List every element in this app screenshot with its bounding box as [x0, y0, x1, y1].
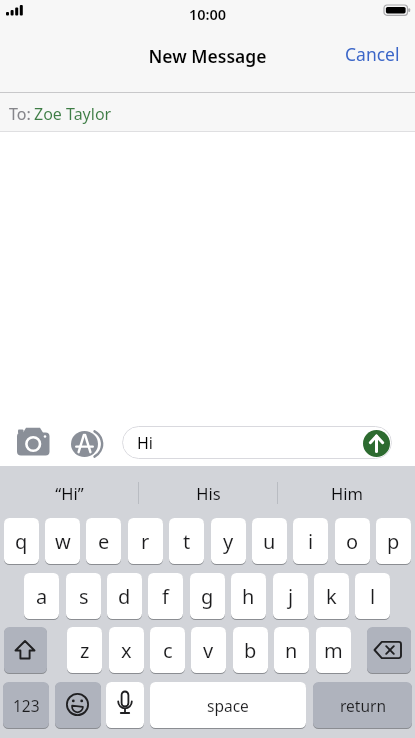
staticText: p: [387, 528, 400, 555]
button[interactable]: [363, 430, 390, 457]
button[interactable]: j: [273, 573, 308, 619]
staticText: m: [324, 637, 343, 664]
button[interactable]: d: [107, 573, 142, 619]
staticText: b: [244, 637, 257, 664]
button[interactable]: To:: [0, 93, 415, 131]
button[interactable]: n: [274, 627, 309, 673]
button[interactable]: k: [314, 573, 349, 619]
staticText: Him: [331, 482, 363, 504]
staticText: g: [201, 583, 214, 610]
staticText: a: [36, 583, 48, 610]
button[interactable]: [367, 627, 411, 673]
staticText: Cancel: [345, 42, 400, 66]
button[interactable]: g: [190, 573, 225, 619]
staticText: Zoe Taylor: [34, 103, 112, 125]
button[interactable]: w: [45, 518, 80, 564]
staticText: k: [326, 583, 337, 610]
staticText: v: [203, 637, 214, 664]
button[interactable]: [106, 682, 144, 728]
button[interactable]: l: [355, 573, 390, 619]
button[interactable]: His: [139, 470, 277, 515]
staticText: x: [121, 637, 132, 664]
staticText: His: [196, 482, 221, 504]
staticText: d: [118, 583, 131, 610]
button[interactable]: a: [24, 573, 59, 619]
button[interactable]: p: [376, 518, 411, 564]
staticText: Hi: [137, 432, 153, 454]
staticText: j: [288, 583, 294, 610]
button[interactable]: Hi: [122, 426, 392, 459]
button[interactable]: o: [335, 518, 370, 564]
staticText: s: [79, 583, 89, 610]
button[interactable]: i: [293, 518, 328, 564]
staticText: f: [162, 583, 169, 610]
staticText: l: [370, 583, 376, 610]
button[interactable]: c: [150, 627, 185, 673]
staticText: i: [308, 528, 314, 555]
staticText: z: [80, 637, 90, 664]
button[interactable]: 123: [3, 682, 49, 728]
staticText: t: [183, 528, 191, 555]
button[interactable]: y: [211, 518, 246, 564]
button[interactable]: x: [109, 627, 144, 673]
button[interactable]: b: [233, 627, 268, 673]
staticText: 123: [13, 695, 40, 716]
button[interactable]: r: [128, 518, 163, 564]
staticText: c: [163, 637, 173, 664]
button[interactable]: m: [316, 627, 351, 673]
staticText: n: [285, 637, 298, 664]
button[interactable]: return: [313, 682, 412, 728]
button[interactable]: t: [169, 518, 204, 564]
staticText: r: [141, 528, 150, 555]
staticText: h: [242, 583, 255, 610]
staticText: o: [346, 528, 359, 555]
button[interactable]: [4, 627, 47, 673]
button[interactable]: [55, 682, 101, 728]
button[interactable]: Cancel: [330, 38, 400, 70]
button[interactable]: Him: [278, 470, 415, 515]
staticText: New Message: [0, 44, 415, 68]
button[interactable]: v: [191, 627, 226, 673]
button[interactable]: e: [86, 518, 121, 564]
staticText: “Hi”: [55, 482, 84, 504]
staticText: e: [98, 528, 110, 555]
staticText: q: [15, 528, 28, 555]
button[interactable]: [14, 426, 54, 458]
staticText: y: [223, 528, 234, 555]
button[interactable]: h: [231, 573, 266, 619]
staticText: w: [55, 528, 71, 555]
button[interactable]: z: [67, 627, 102, 673]
button[interactable]: space: [150, 682, 306, 728]
button[interactable]: u: [252, 518, 287, 564]
button[interactable]: “Hi”: [0, 470, 138, 515]
button[interactable]: q: [4, 518, 39, 564]
staticText: To:: [9, 103, 31, 125]
staticText: return: [340, 695, 386, 716]
staticText: u: [263, 528, 276, 555]
staticText: 10:00: [0, 4, 415, 24]
button[interactable]: f: [148, 573, 183, 619]
staticText: space: [207, 695, 249, 716]
button[interactable]: s: [66, 573, 101, 619]
button[interactable]: [68, 426, 106, 458]
